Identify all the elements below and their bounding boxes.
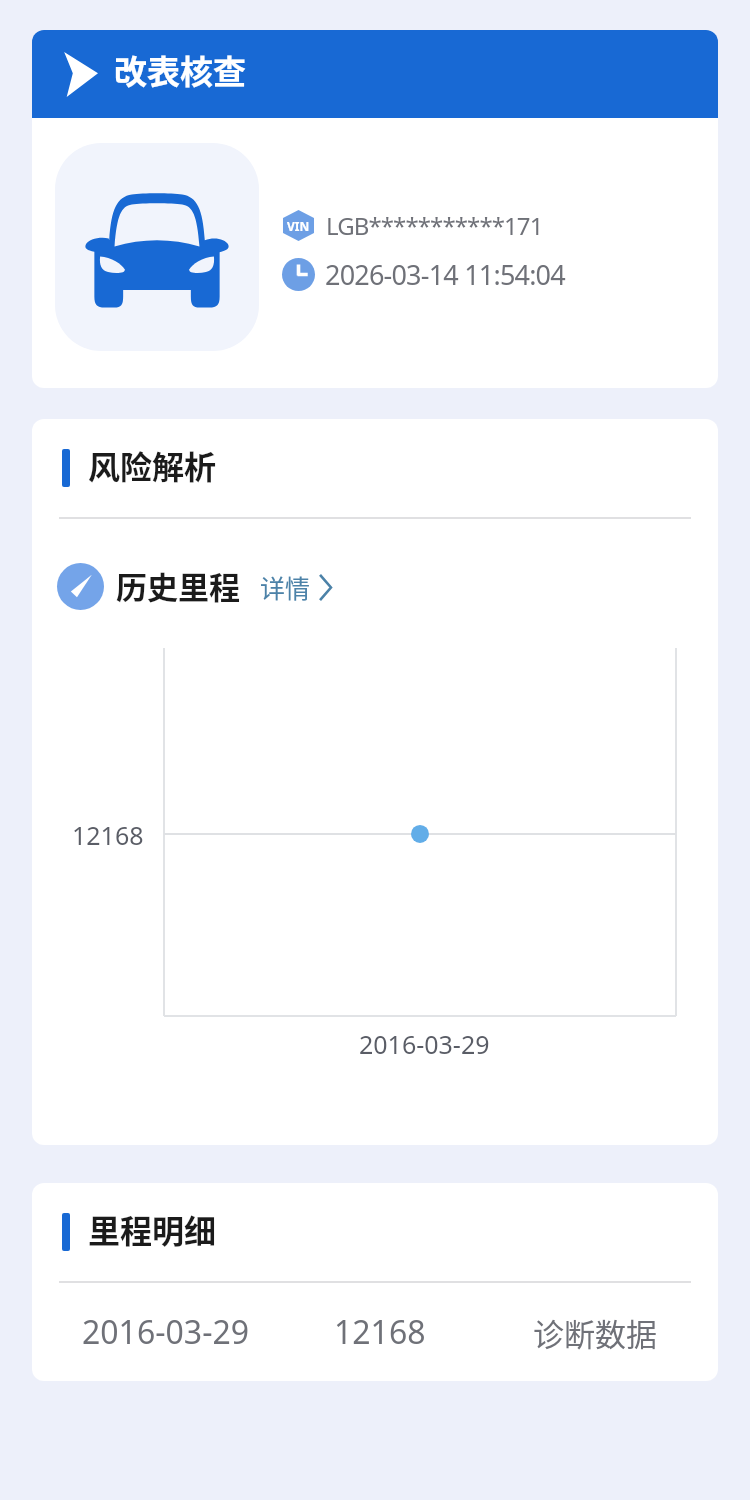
staticText: 2016-03-29 xyxy=(82,1310,250,1354)
staticText: 里程明细 xyxy=(88,1206,217,1252)
staticText: 历史里程 xyxy=(116,563,240,608)
button[interactable]: 历史里程 xyxy=(32,563,718,610)
button[interactable]: 车辆信息 xyxy=(32,118,718,388)
staticText: 12168 xyxy=(72,818,144,852)
staticText: 2026-03-14 11:54:04 xyxy=(325,256,565,293)
button[interactable]: 改表核查 xyxy=(32,30,718,118)
button[interactable]: 详情 xyxy=(260,569,332,605)
staticText: 改表核查 xyxy=(114,46,246,94)
staticText: VIN xyxy=(287,218,310,234)
staticText: LGB***********171 xyxy=(326,209,543,242)
button[interactable]: 2016-03-29 xyxy=(32,1283,718,1381)
staticText: 诊断数据 xyxy=(533,1310,657,1355)
staticText: 风险解析 xyxy=(88,442,217,488)
staticText: 12168 xyxy=(334,1310,426,1354)
staticText: 详情 xyxy=(260,569,311,605)
staticText: 2016-03-29 xyxy=(359,1027,490,1061)
